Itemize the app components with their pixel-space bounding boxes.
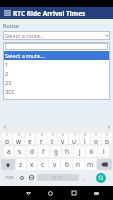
staticText: 2 bbox=[5, 70, 9, 77]
button[interactable]: 2 bbox=[13, 133, 24, 144]
staticText: k bbox=[90, 147, 94, 156]
staticText: r bbox=[40, 137, 43, 144]
staticText: 7 bbox=[74, 133, 76, 137]
button[interactable]: Home bbox=[39, 186, 62, 200]
staticText: p bbox=[105, 137, 109, 144]
button[interactable]: m bbox=[85, 159, 96, 170]
staticText: 3 bbox=[29, 133, 31, 137]
staticText: o bbox=[94, 137, 98, 144]
staticText: d bbox=[30, 147, 34, 156]
button[interactable]: c bbox=[38, 159, 48, 170]
staticText: e bbox=[28, 137, 32, 144]
staticText: q bbox=[5, 137, 9, 144]
button[interactable]: Shift bbox=[1, 159, 15, 170]
staticText: u bbox=[72, 137, 77, 144]
button[interactable]: Expand suggestions bbox=[0, 122, 9, 132]
staticText: Select a route... bbox=[5, 32, 105, 39]
staticText: 2 bbox=[18, 133, 20, 137]
button[interactable]: Search bbox=[90, 172, 112, 183]
staticText: v bbox=[53, 160, 57, 169]
button[interactable]: 8 bbox=[80, 133, 90, 144]
button[interactable]: s bbox=[15, 146, 25, 157]
staticText: ?123 bbox=[5, 175, 14, 180]
button[interactable]: z bbox=[16, 159, 26, 170]
button[interactable]: 1 bbox=[3, 60, 110, 69]
staticText: 1 bbox=[6, 133, 8, 137]
staticText: y bbox=[61, 137, 65, 144]
button[interactable]: 5 bbox=[47, 133, 57, 144]
button[interactable]: k bbox=[86, 146, 97, 157]
button[interactable]: . bbox=[80, 172, 89, 183]
button[interactable]: 7 bbox=[69, 133, 79, 144]
staticText: 5 bbox=[52, 133, 54, 137]
staticText: Select a route... bbox=[5, 52, 45, 59]
staticText: w bbox=[16, 137, 22, 144]
button[interactable]: Clipboard bbox=[104, 122, 113, 132]
staticText: l bbox=[103, 147, 105, 156]
button[interactable]: ?123 bbox=[1, 172, 17, 183]
staticText: 6 bbox=[62, 133, 64, 137]
button[interactable]: 9 bbox=[91, 133, 101, 144]
button[interactable]: h bbox=[62, 146, 73, 157]
button[interactable]: v bbox=[49, 159, 60, 170]
staticText: 9 bbox=[95, 133, 97, 137]
staticText: 0 bbox=[106, 133, 108, 137]
button[interactable]: 3CC bbox=[3, 87, 110, 96]
staticText: i bbox=[84, 137, 86, 144]
button[interactable]: x bbox=[27, 159, 37, 170]
staticText: c bbox=[41, 160, 45, 169]
staticText: h bbox=[65, 147, 70, 156]
staticText: a bbox=[7, 147, 11, 156]
staticText: g bbox=[54, 147, 58, 156]
staticText: 4 bbox=[41, 133, 43, 137]
staticText: n bbox=[76, 160, 81, 169]
staticText: RTC Ride Arrival Times bbox=[13, 9, 86, 18]
button[interactable]: Change language bbox=[27, 172, 36, 183]
button[interactable]: Backspace bbox=[97, 159, 112, 170]
button[interactable]: f bbox=[38, 146, 49, 157]
button[interactable]: Switch keyboard bbox=[85, 186, 108, 200]
staticText: EN (US) bbox=[52, 176, 64, 180]
staticText: x bbox=[30, 160, 34, 169]
staticText: . bbox=[84, 174, 86, 182]
button[interactable]: Open navigation menu bbox=[2, 8, 12, 18]
button[interactable]: 0 bbox=[102, 133, 112, 144]
button[interactable]: 2S bbox=[3, 78, 110, 87]
button[interactable]: Select a route... bbox=[3, 31, 110, 40]
staticText: t bbox=[51, 137, 54, 144]
button[interactable]: Close keyboard bbox=[17, 186, 39, 200]
staticText: s bbox=[18, 147, 22, 156]
button[interactable]: Select a route... bbox=[3, 51, 110, 60]
button[interactable]: 4 bbox=[36, 133, 46, 144]
staticText: 2S bbox=[5, 79, 12, 86]
button[interactable]: l bbox=[98, 146, 109, 157]
button[interactable]: n bbox=[73, 159, 84, 170]
button[interactable]: d bbox=[26, 146, 37, 157]
button[interactable]: Search routes bbox=[5, 43, 108, 50]
button[interactable]: b bbox=[61, 159, 72, 170]
button[interactable]: j bbox=[74, 146, 85, 157]
button[interactable]: 2 bbox=[3, 69, 110, 78]
staticText: b bbox=[65, 160, 69, 169]
button[interactable]: Emoji bbox=[18, 172, 26, 183]
staticText: 3CC bbox=[5, 88, 15, 95]
staticText: f bbox=[42, 147, 45, 156]
staticText: 8 bbox=[84, 133, 86, 137]
button[interactable]: Space bbox=[37, 174, 79, 181]
button[interactable]: g bbox=[50, 146, 61, 157]
button[interactable]: 3 bbox=[25, 133, 35, 144]
staticText: z bbox=[19, 160, 23, 169]
staticText: j bbox=[79, 147, 81, 156]
button[interactable]: a bbox=[4, 146, 14, 157]
button[interactable]: 6 bbox=[58, 133, 68, 144]
staticText: 1 bbox=[5, 61, 9, 68]
button[interactable]: 1 bbox=[1, 133, 12, 144]
staticText: Route: bbox=[3, 22, 20, 29]
button[interactable]: Recent apps bbox=[62, 186, 85, 200]
staticText: m bbox=[87, 160, 94, 169]
